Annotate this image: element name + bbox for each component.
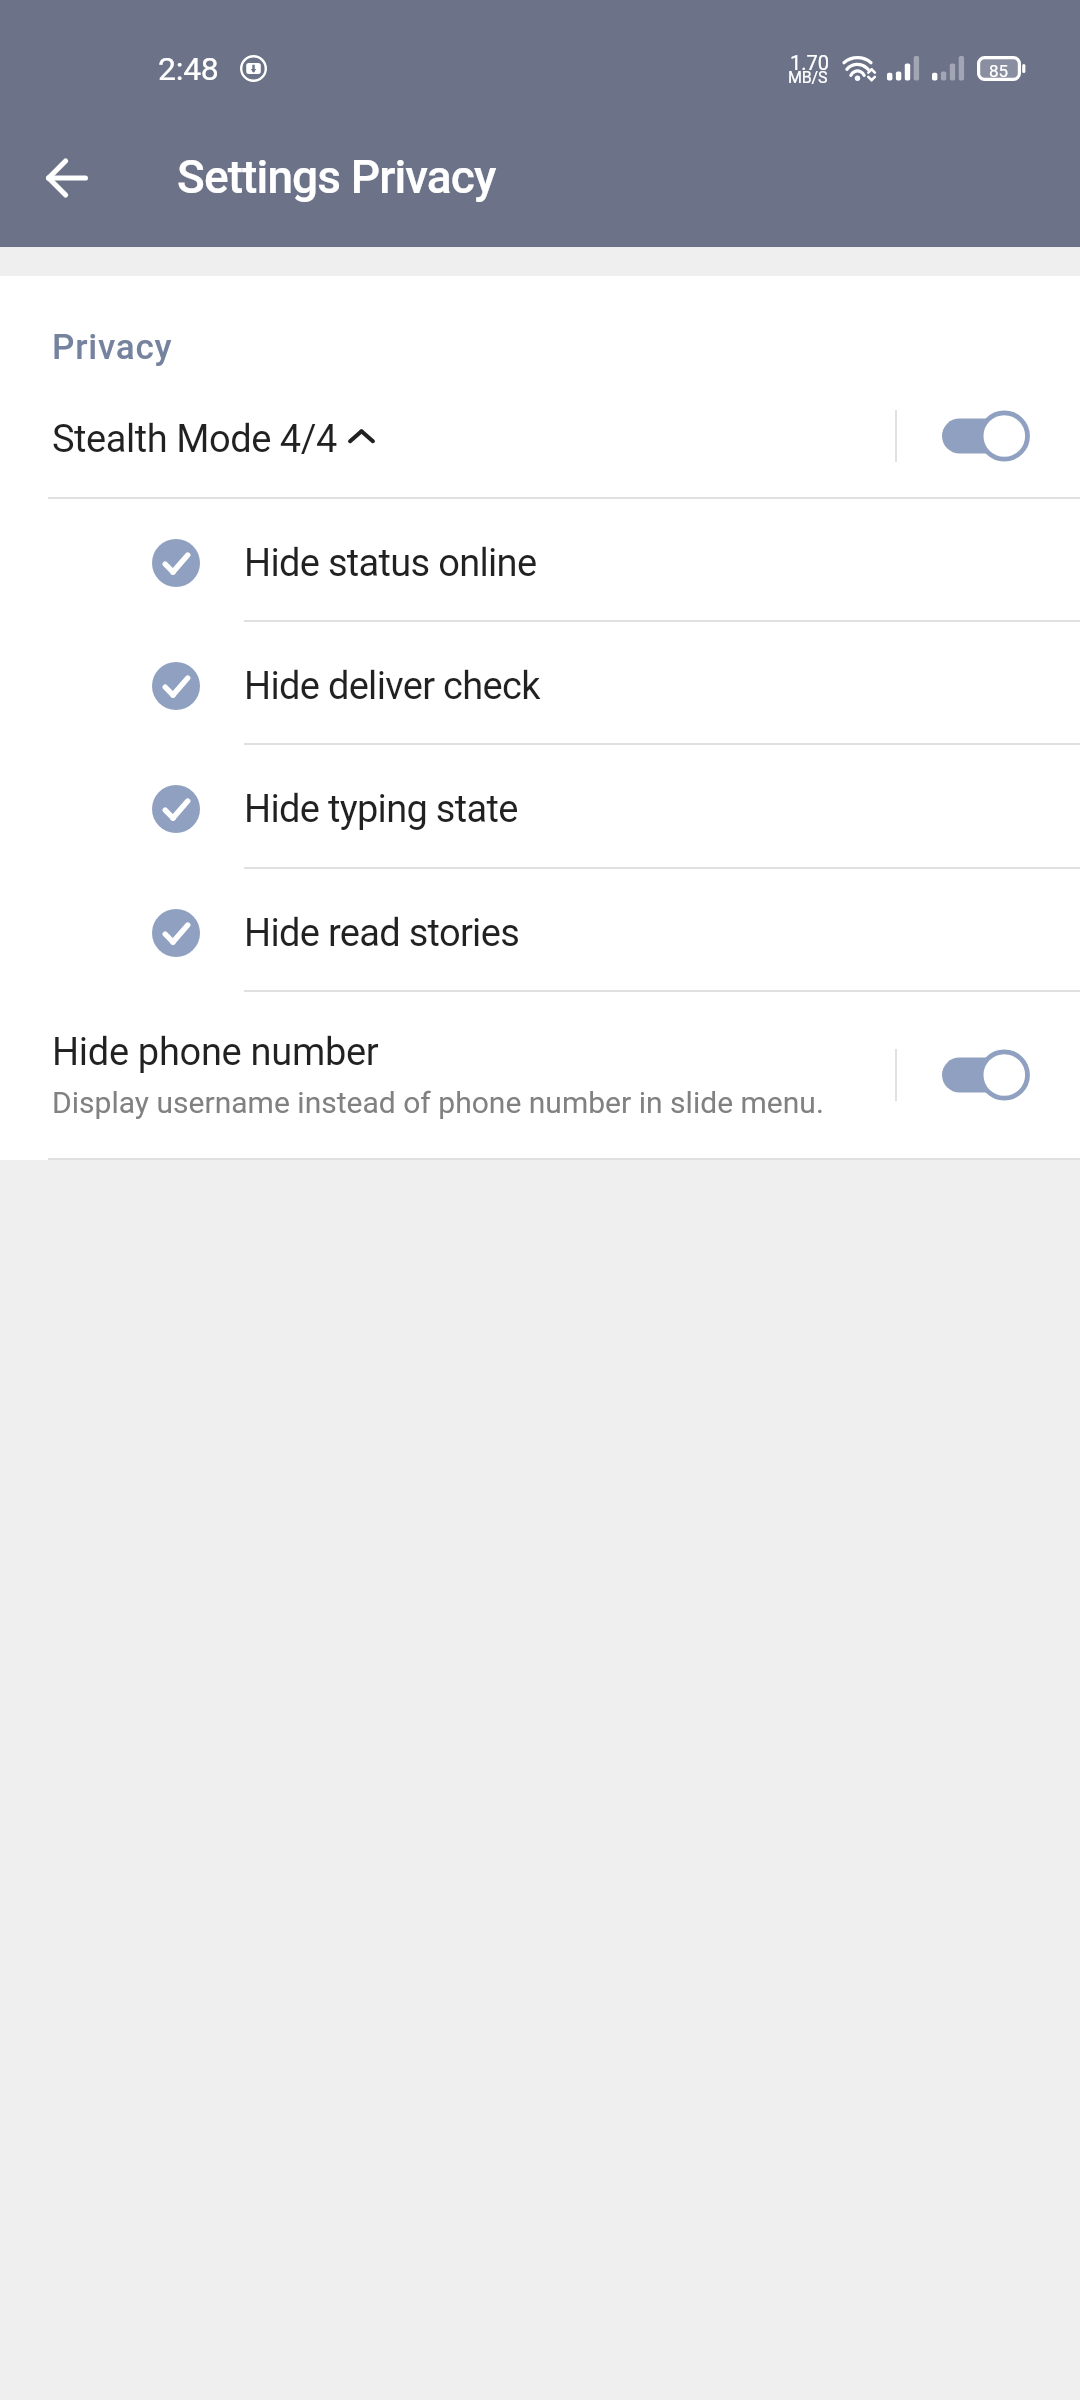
button[interactable]: Toggle [942, 1049, 1028, 1101]
staticText: Hide read stories [244, 911, 520, 956]
staticText: 1.70 [790, 51, 829, 74]
button[interactable]: Hide phone number [0, 989, 1080, 1155]
staticText: MB/S [788, 68, 828, 87]
staticText: Settings Privacy [177, 150, 496, 204]
button[interactable]: Toggle [942, 410, 1028, 462]
button[interactable]: Stealth Mode 4/4 [0, 386, 1080, 493]
button[interactable]: Hide status online [0, 497, 1080, 620]
staticText: Privacy [52, 327, 173, 368]
button[interactable]: Hide deliver check [0, 620, 1080, 743]
staticText: Stealth Mode 4/4 [52, 417, 337, 462]
staticText: Hide deliver check [244, 664, 540, 709]
staticText: Hide phone number [52, 1030, 379, 1075]
staticText: 85 [989, 61, 1009, 81]
button[interactable]: Back [27, 138, 107, 218]
staticText: Hide typing state [244, 787, 518, 832]
button[interactable]: Hide read stories [0, 867, 1080, 990]
button[interactable]: Hide typing state [0, 743, 1080, 866]
staticText: 2:48 [158, 50, 219, 88]
staticText: Display username instead of phone number… [52, 1085, 824, 1120]
staticText: Hide status online [244, 541, 537, 586]
